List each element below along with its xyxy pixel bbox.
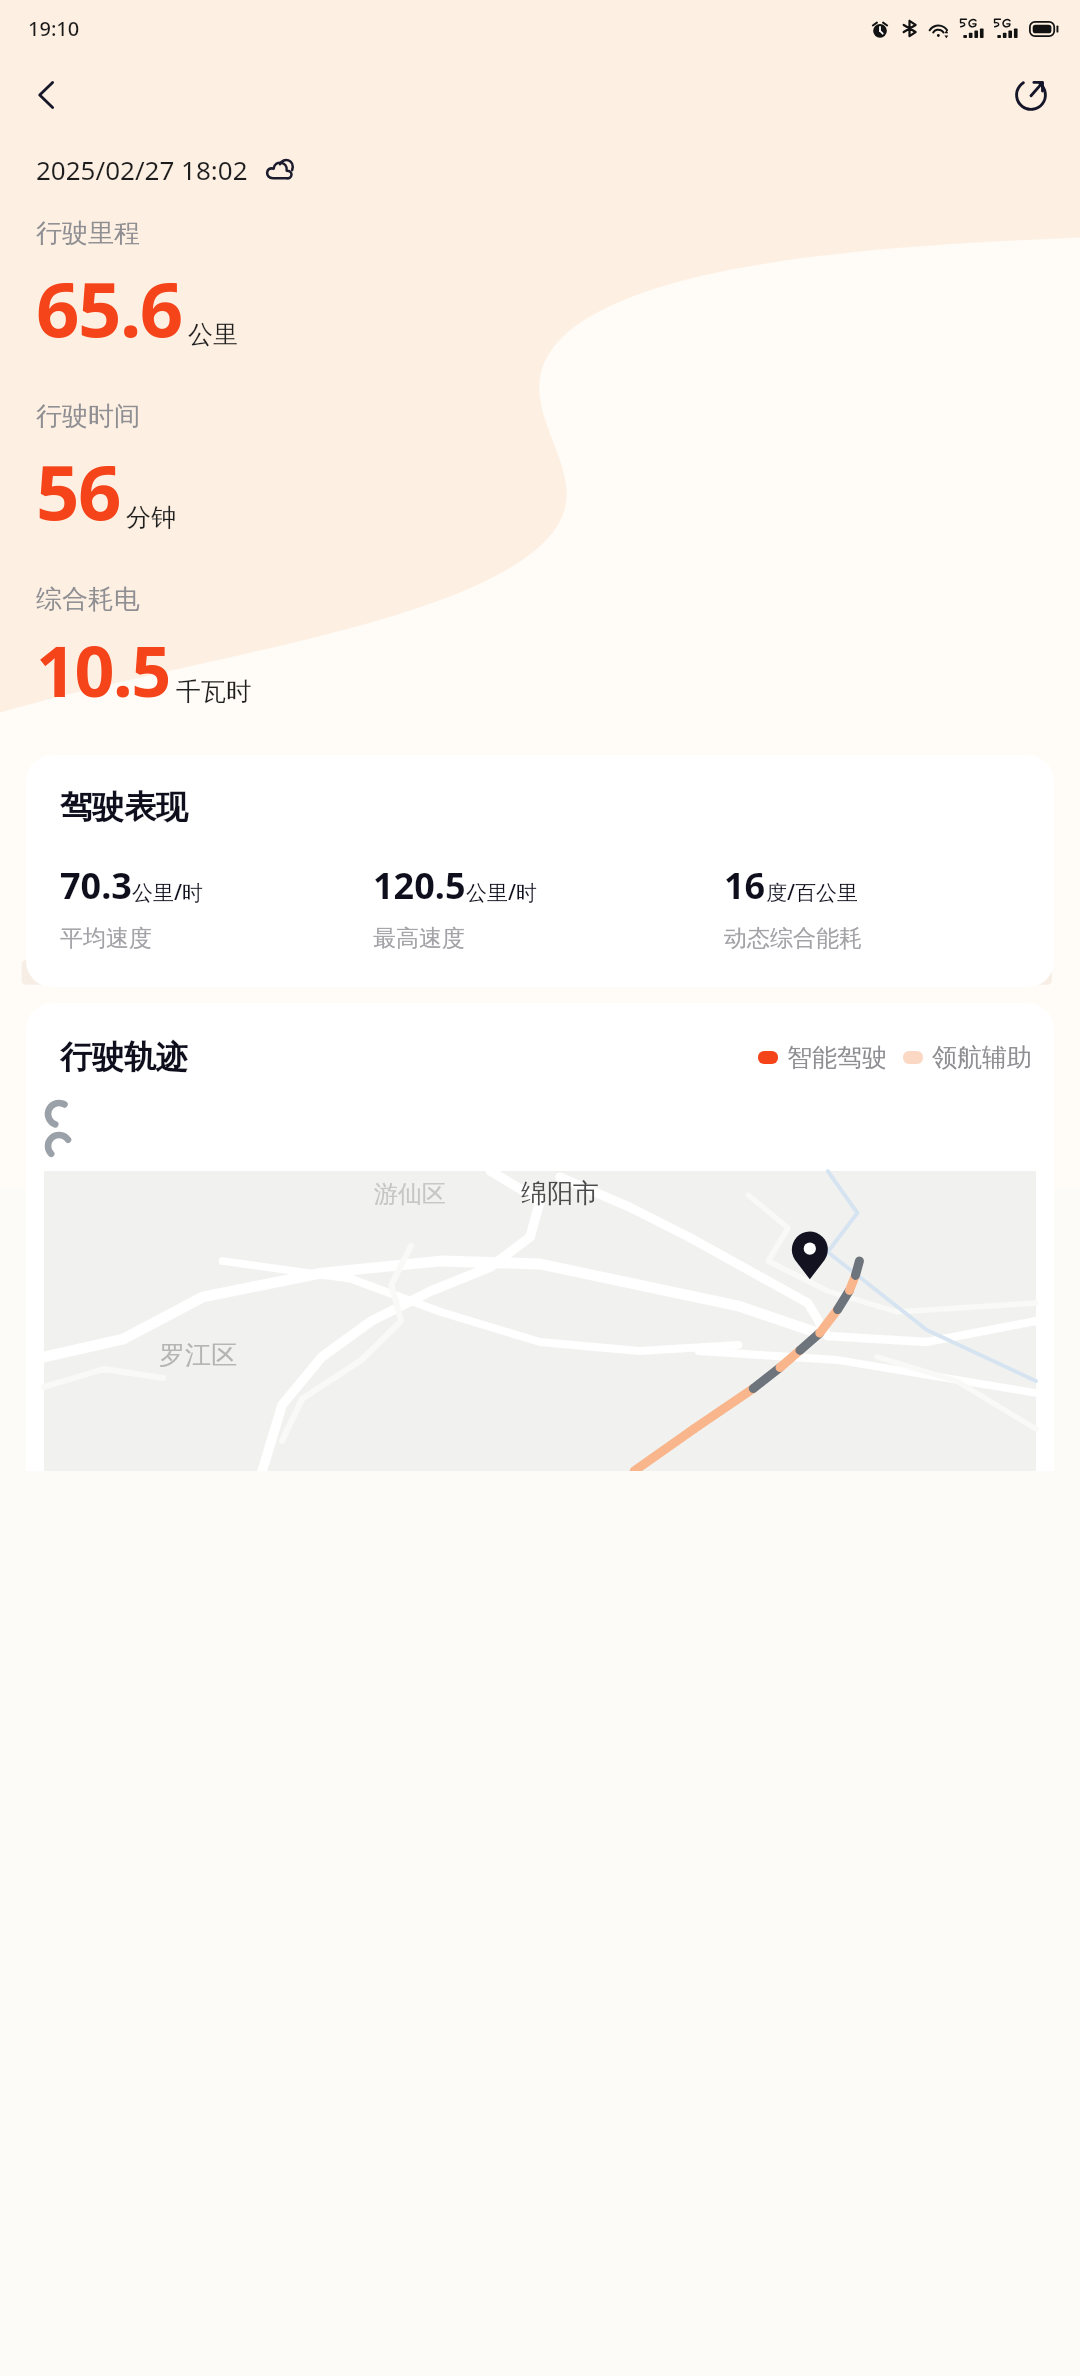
staticText: 10.5: [36, 622, 170, 717]
staticText: 公里: [188, 319, 238, 350]
staticText: 罗江区: [159, 1339, 237, 1372]
staticText: 行驶轨迹: [60, 1037, 188, 1077]
staticText: 65.6: [36, 256, 182, 360]
button[interactable]: 驾驶表现: [26, 755, 1054, 987]
staticText: 70.3: [60, 861, 132, 910]
staticText: 领航辅助: [932, 1042, 1032, 1073]
staticText: 平均速度: [60, 924, 152, 953]
staticText: 绵阳市: [521, 1177, 599, 1210]
staticText: 动态综合能耗: [724, 924, 862, 953]
staticText: 分钟: [126, 502, 176, 533]
staticText: 2025/02/27 18:02: [36, 152, 248, 187]
staticText: 公里/时: [466, 878, 538, 907]
button[interactable]: 行驶轨迹: [26, 1003, 1054, 1471]
staticText: 16: [724, 861, 766, 910]
staticText: 公里/时: [132, 878, 204, 907]
staticText: 行驶时间: [36, 400, 140, 433]
staticText: 游仙区: [374, 1179, 446, 1209]
staticText: 19:10: [28, 15, 80, 42]
staticText: 千瓦时: [176, 676, 251, 707]
staticText: 56: [36, 439, 120, 543]
staticText: 综合耗电: [36, 583, 140, 616]
staticText: 最高速度: [373, 924, 465, 953]
staticText: 驾驶表现: [60, 787, 188, 827]
staticText: 智能驾驶: [787, 1042, 887, 1073]
staticText: 行驶里程: [36, 217, 140, 250]
staticText: 度/百公里: [766, 878, 859, 907]
staticText: 120.5: [373, 861, 466, 910]
button[interactable]: Back: [18, 66, 76, 124]
button[interactable]: Share: [1002, 66, 1060, 124]
